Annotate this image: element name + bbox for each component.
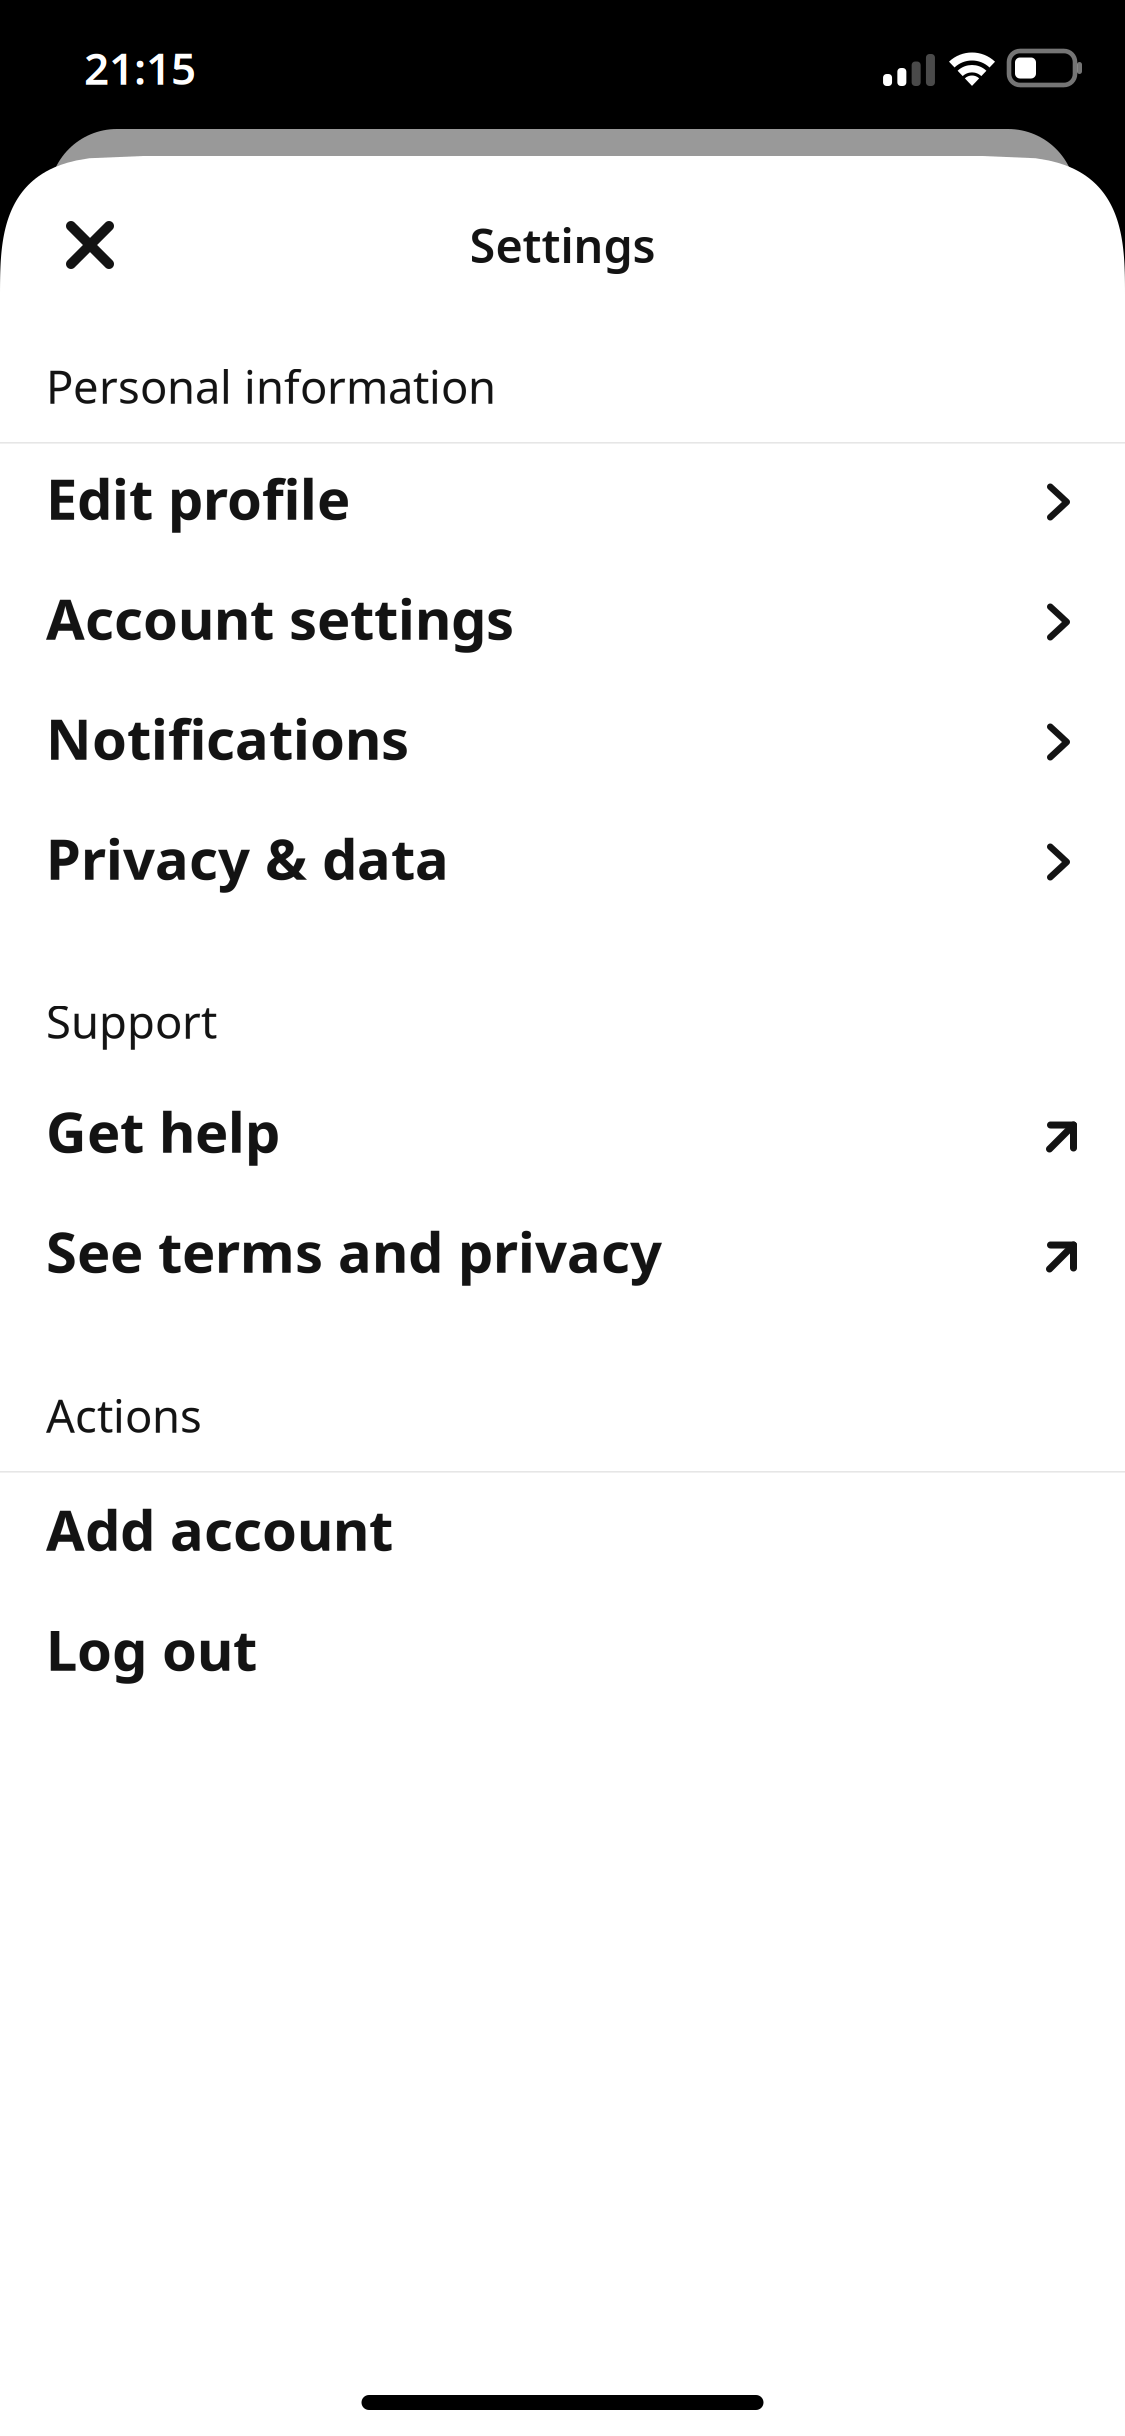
button[interactable]: Privacy & data — [0, 798, 1125, 918]
staticText: Personal information — [46, 356, 496, 416]
button[interactable]: Notifications — [0, 678, 1125, 798]
staticText: Notifications — [46, 701, 409, 775]
button[interactable]: Get help — [0, 1071, 1125, 1191]
button[interactable]: Account settings — [0, 558, 1125, 678]
staticText: Add account — [46, 1492, 393, 1566]
staticText: Support — [46, 991, 217, 1051]
button[interactable]: Add account — [0, 1469, 1125, 1589]
staticText: See terms and privacy — [46, 1214, 662, 1288]
staticText: Settings — [469, 214, 655, 276]
staticText: Log out — [46, 1612, 257, 1686]
staticText: 21:15 — [84, 39, 196, 97]
staticText: Get help — [46, 1094, 280, 1168]
button[interactable]: Log out — [0, 1589, 1125, 1709]
staticText: Account settings — [46, 581, 514, 655]
staticText: Privacy & data — [46, 821, 449, 895]
button[interactable]: See terms and privacy — [0, 1191, 1125, 1311]
button[interactable]: Edit profile — [0, 438, 1125, 558]
staticText: Actions — [46, 1385, 202, 1445]
button[interactable]: Close — [42, 197, 138, 293]
staticText: Edit profile — [46, 461, 350, 535]
